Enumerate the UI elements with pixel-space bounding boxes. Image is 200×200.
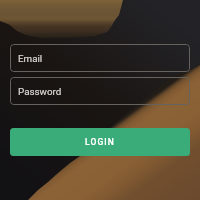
button[interactable]: Email: [10, 44, 190, 72]
staticText: LOGIN: [85, 137, 115, 147]
button[interactable]: Password: [10, 77, 190, 105]
staticText: Email: [18, 53, 43, 64]
button[interactable]: LOGIN: [10, 128, 190, 156]
staticText: Password: [18, 86, 62, 97]
